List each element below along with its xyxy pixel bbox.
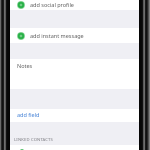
staticText: add social profile <box>30 1 74 8</box>
other: Add <box>18 149 26 150</box>
staticText: LINKED CONTACTS <box>14 137 54 143</box>
staticText: Notes <box>17 62 33 69</box>
button[interactable]: add field <box>10 109 139 122</box>
button[interactable]: Add <box>10 28 139 43</box>
other: Add <box>17 32 25 40</box>
staticText: add instant message <box>30 32 84 39</box>
button[interactable]: Notes <box>10 59 139 89</box>
staticText: add field <box>17 111 40 118</box>
button[interactable]: Add <box>10 145 139 150</box>
button[interactable]: Add <box>10 0 139 10</box>
other: Add <box>17 1 25 9</box>
